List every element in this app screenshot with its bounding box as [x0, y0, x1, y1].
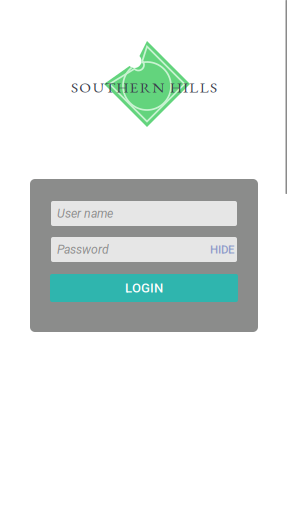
staticText: Password	[57, 242, 109, 257]
staticText: SOUTHERN HILLS	[71, 77, 217, 97]
staticText: HIDE	[210, 243, 234, 256]
button[interactable]: LOGIN	[50, 274, 238, 302]
button[interactable]: HIDE	[202, 243, 234, 256]
staticText: User name	[57, 206, 113, 221]
staticText: LOGIN	[125, 280, 163, 296]
